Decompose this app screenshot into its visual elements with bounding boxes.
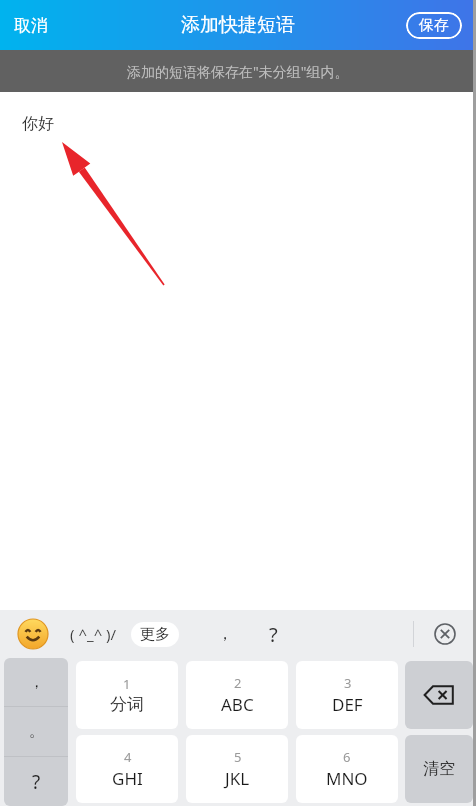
staticText: 更多 [140, 625, 170, 644]
button[interactable]: 5 [186, 735, 288, 803]
staticText: 你好 [22, 114, 54, 134]
button[interactable]: ? [261, 619, 286, 650]
staticText: 添加快捷短语 [181, 13, 295, 37]
button[interactable]: 1 [76, 661, 178, 729]
staticText: ， [217, 624, 233, 644]
button[interactable]: 2 [186, 661, 288, 729]
button[interactable]: 取消 [0, 9, 62, 42]
button[interactable]: Emoji [18, 619, 48, 649]
staticText: 3 [344, 674, 352, 692]
staticText: 。 [29, 722, 44, 741]
staticText: 1 [123, 675, 131, 693]
staticText: MNO [326, 767, 368, 790]
staticText: 6 [343, 748, 351, 766]
button[interactable]: 更多 [131, 622, 179, 647]
staticText: ? [32, 769, 41, 795]
button[interactable]: 保存 [406, 12, 462, 39]
staticText: 5 [234, 748, 242, 766]
button[interactable]: 。 [4, 707, 68, 756]
staticText: ， [29, 673, 44, 692]
button[interactable]: 4 [76, 735, 178, 803]
button[interactable]: Close keyboard [414, 610, 476, 658]
button[interactable]: ( ^_^ )/ [66, 618, 121, 650]
staticText: 添加的短语将保存在"未分组"组内。 [127, 62, 349, 81]
staticText: ? [269, 621, 278, 648]
staticText: GHI [112, 767, 143, 790]
button[interactable]: 你好 [0, 92, 476, 610]
button[interactable]: Backspace [405, 661, 473, 729]
staticText: JKL [225, 767, 250, 790]
staticText: ABC [221, 693, 254, 716]
button[interactable]: ， [209, 620, 241, 648]
staticText: 清空 [423, 759, 455, 779]
staticText: 2 [234, 674, 242, 692]
button[interactable]: ? [4, 757, 68, 806]
staticText: 4 [124, 748, 132, 766]
button[interactable]: 清空 [405, 735, 473, 803]
staticText: ( ^_^ )/ [70, 624, 117, 644]
button[interactable]: 3 [296, 661, 398, 729]
staticText: 分词 [110, 694, 144, 715]
button[interactable]: ， [4, 658, 68, 706]
button[interactable]: 6 [296, 735, 398, 803]
staticText: DEF [332, 693, 363, 716]
staticText: 保存 [419, 16, 449, 35]
staticText: 取消 [14, 15, 48, 36]
